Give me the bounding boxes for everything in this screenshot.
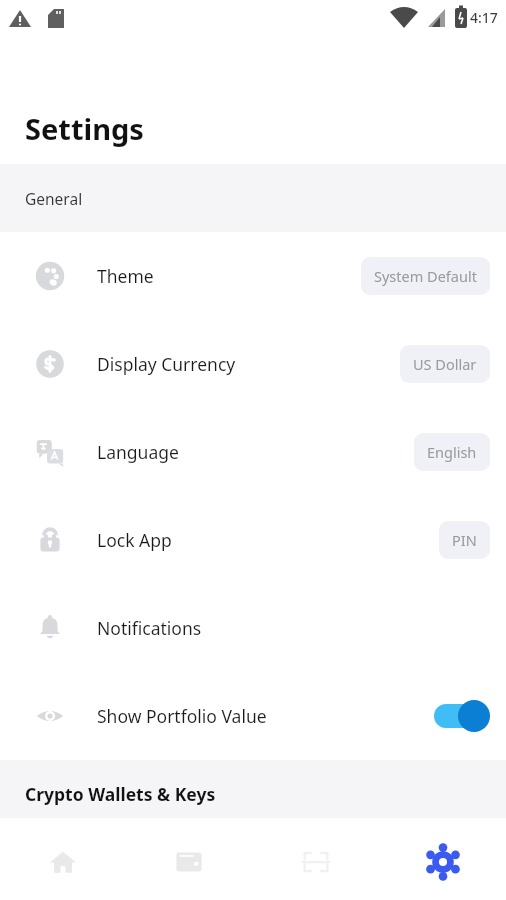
button[interactable]: Wallet: [126, 824, 252, 900]
staticText: English: [427, 442, 477, 462]
button[interactable]: Home: [0, 824, 126, 900]
staticText: Theme: [97, 264, 361, 288]
button[interactable]: Lock App: [0, 496, 506, 584]
button[interactable]: System Default: [361, 257, 490, 295]
staticText: Display Currency: [97, 352, 400, 376]
staticText: 4:17: [470, 8, 498, 27]
button[interactable]: US Dollar: [400, 345, 490, 383]
button[interactable]: Show Portfolio Value: [0, 672, 506, 760]
button[interactable]: Notifications: [0, 584, 506, 672]
staticText: System Default: [374, 266, 477, 286]
staticText: General: [25, 188, 83, 209]
staticText: Language: [97, 440, 414, 464]
button[interactable]: Theme: [0, 232, 506, 320]
button[interactable]: Language: [0, 408, 506, 496]
staticText: Notifications: [97, 616, 490, 640]
staticText: Settings: [25, 109, 144, 148]
staticText: US Dollar: [413, 354, 477, 374]
button[interactable]: Settings: [379, 824, 506, 900]
button[interactable]: Display Currency: [0, 320, 506, 408]
staticText: Lock App: [97, 528, 439, 552]
button[interactable]: PIN: [439, 521, 490, 559]
button[interactable]: Show Portfolio Value toggle: [434, 699, 490, 733]
staticText: PIN: [452, 530, 477, 550]
staticText: Crypto Wallets & Keys: [25, 782, 216, 806]
button[interactable]: English: [414, 433, 490, 471]
staticText: Show Portfolio Value: [97, 704, 434, 728]
